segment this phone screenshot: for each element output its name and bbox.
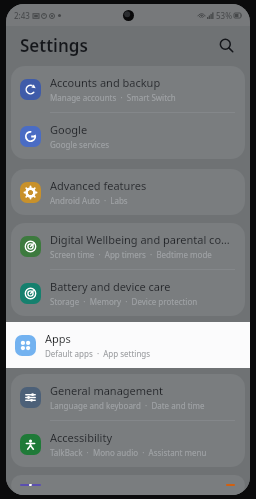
staticText: 2:43 bbox=[14, 10, 30, 21]
button[interactable]: Google bbox=[11, 113, 245, 159]
staticText: Language and keyboard · Date and time bbox=[50, 400, 205, 411]
button[interactable]: Digital Wellbeing and parental controls bbox=[11, 223, 245, 269]
staticText: Battery and device care bbox=[50, 279, 171, 294]
button[interactable]: Apps bbox=[6, 322, 250, 368]
staticText: Accounts and backup bbox=[50, 75, 161, 90]
staticText: Digital Wellbeing and parental controls bbox=[50, 232, 235, 247]
staticText: Screen time · App timers · Bedtime mode bbox=[50, 249, 212, 260]
button[interactable]: Software update bbox=[11, 475, 245, 495]
button[interactable]: Battery and device care bbox=[11, 270, 245, 316]
staticText: 53% bbox=[216, 10, 232, 21]
button[interactable]: General management bbox=[11, 374, 245, 420]
staticText: Advanced features bbox=[50, 178, 147, 193]
button[interactable]: Accessibility bbox=[11, 421, 245, 467]
button[interactable]: Search settings bbox=[212, 31, 240, 59]
staticText: Google services bbox=[50, 139, 110, 150]
staticText: Accessibility bbox=[50, 430, 113, 445]
staticText: Default apps · App settings bbox=[45, 348, 151, 359]
staticText: General management bbox=[50, 383, 164, 398]
staticText: Storage · Memory · Device protection bbox=[50, 296, 198, 307]
staticText: Settings bbox=[20, 34, 88, 57]
staticText: Manage accounts · Smart Switch bbox=[50, 92, 176, 103]
staticText: Apps bbox=[45, 331, 71, 346]
button[interactable]: Accounts and backup bbox=[11, 66, 245, 112]
button[interactable]: Advanced features bbox=[11, 169, 245, 215]
staticText: Google bbox=[50, 122, 88, 137]
staticText: Android Auto · Labs bbox=[50, 195, 128, 206]
staticText: TalkBack · Mono audio · Assistant menu bbox=[50, 447, 207, 458]
